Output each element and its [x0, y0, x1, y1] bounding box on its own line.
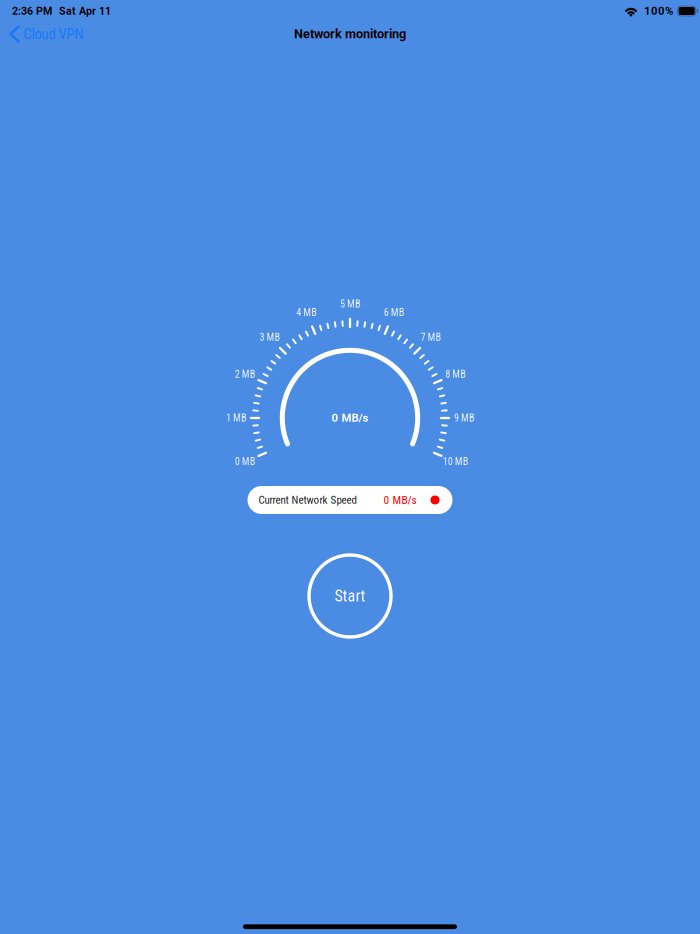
staticText: 7 MB [421, 331, 441, 343]
staticText: 0 MB [235, 456, 255, 467]
staticText: 100% [644, 4, 673, 18]
staticText: Sat Apr 11 [59, 5, 111, 17]
staticText: 9 MB [454, 412, 474, 424]
staticText: 0 MB/s [383, 493, 416, 507]
staticText: 10 MB [443, 456, 468, 467]
staticText: 2 MB [235, 368, 255, 380]
staticText: 5 MB [340, 298, 360, 310]
staticText: 4 MB [296, 307, 316, 318]
staticText: 8 MB [445, 368, 465, 380]
staticText: 2:36 PM [12, 5, 52, 17]
staticText: 1 MB [226, 412, 246, 424]
button[interactable]: Current Network Speed [247, 486, 452, 514]
button[interactable]: Cloud VPN [2, 19, 93, 49]
staticText: 0 MB/s [331, 411, 368, 425]
staticText: 6 MB [384, 307, 404, 318]
staticText: Current Network Speed [258, 493, 356, 506]
staticText: Network monitoring [294, 27, 406, 41]
staticText: 3 MB [259, 331, 279, 343]
staticText: Start [334, 587, 365, 605]
staticText: Cloud VPN [23, 25, 83, 43]
button[interactable]: Start [309, 555, 391, 637]
